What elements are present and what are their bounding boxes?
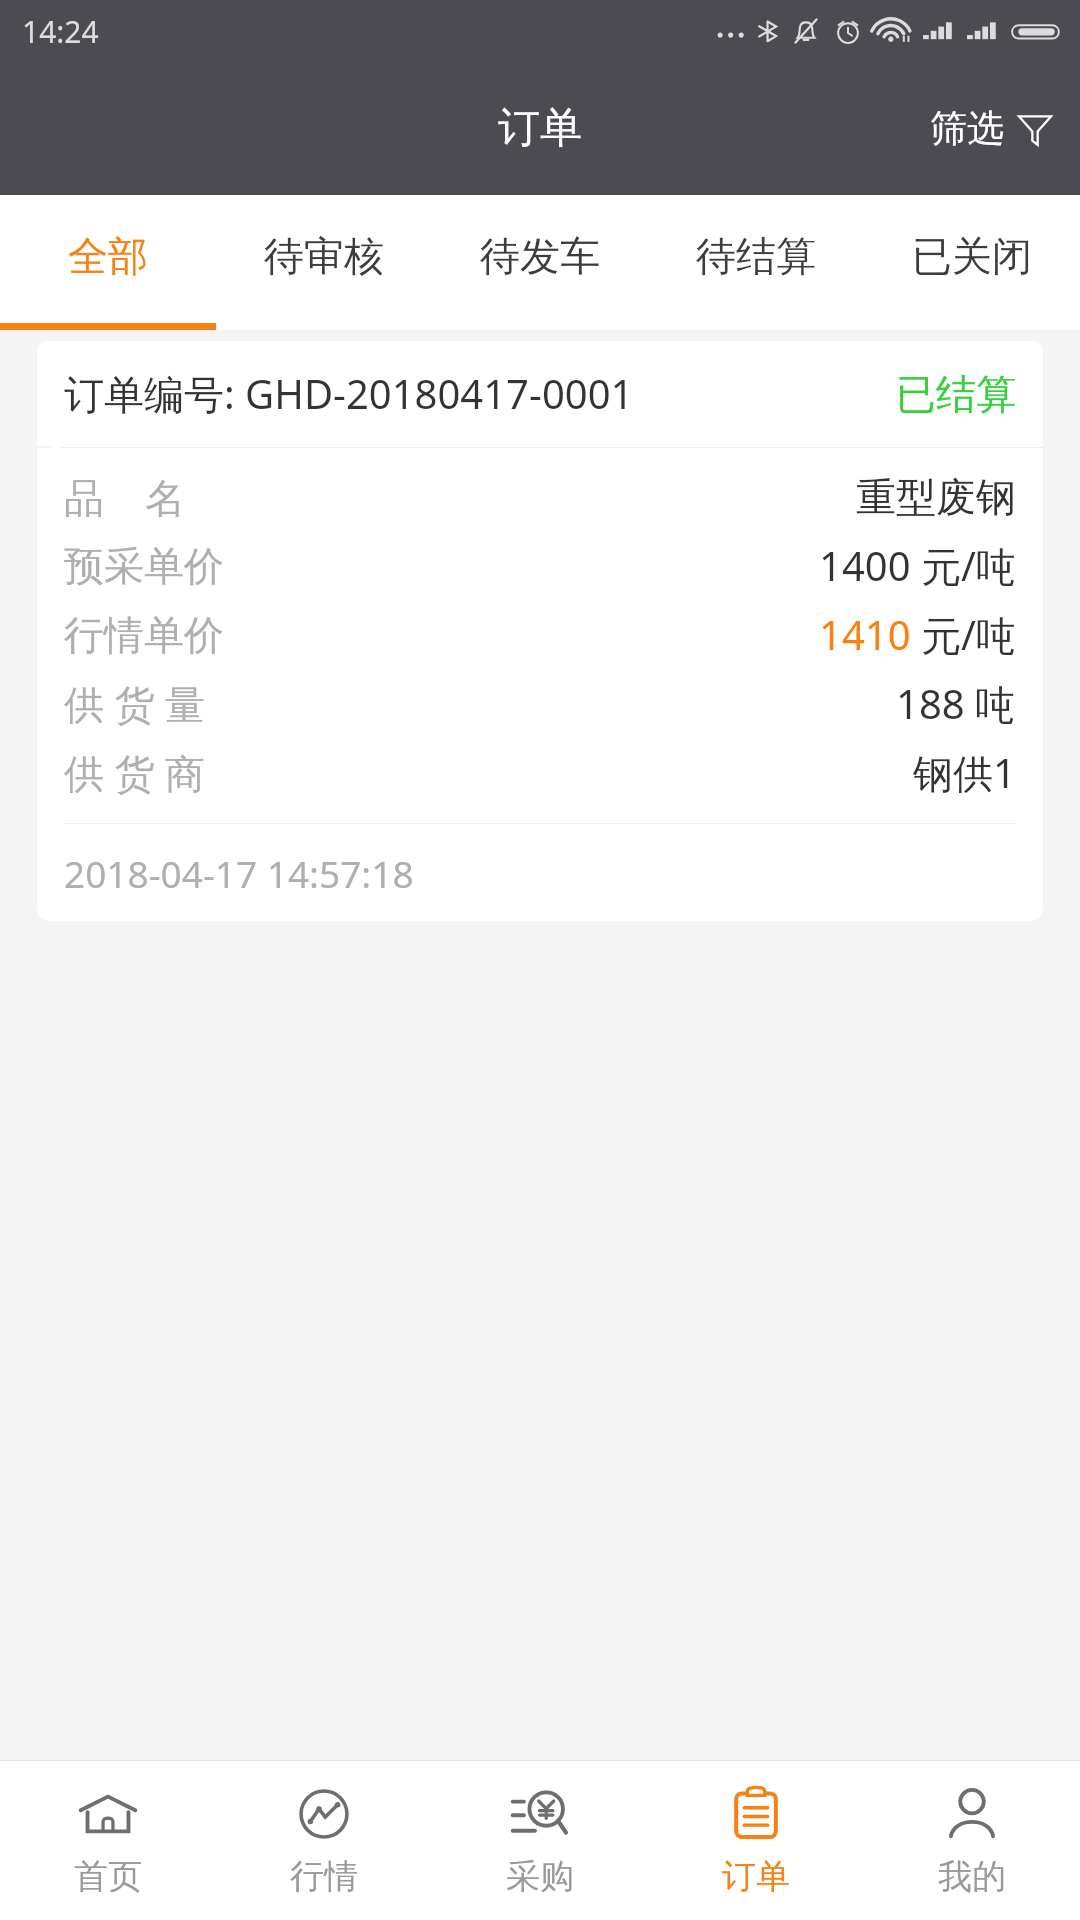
staticText: 已关闭: [912, 231, 1032, 281]
staticText: 供 货 商: [64, 745, 205, 800]
button[interactable]: 行情: [216, 1761, 432, 1920]
staticText: 订单: [722, 1855, 790, 1898]
staticText: 2018-04-17 14:57:18: [64, 848, 414, 898]
staticText: 重型废钢: [856, 472, 1016, 522]
staticText: 筛选: [930, 105, 1004, 152]
staticText: 188 吨: [896, 676, 1016, 731]
staticText: 订单编号: GHD-20180417-0001: [64, 366, 634, 421]
staticText: 供 货 量: [64, 676, 205, 731]
staticText: 行情单价: [64, 610, 224, 660]
staticText: 1410 元/吨: [819, 607, 1016, 662]
button[interactable]: 已关闭: [864, 195, 1080, 330]
button[interactable]: 订单: [648, 1761, 864, 1920]
staticText: 预采单价: [64, 541, 224, 591]
staticText: 待发车: [480, 231, 600, 281]
staticText: 待结算: [696, 231, 816, 281]
staticText: 待审核: [264, 231, 384, 281]
staticText: 1400 元/吨: [819, 538, 1016, 593]
button[interactable]: 待结算: [648, 195, 864, 330]
staticText: 采购: [506, 1855, 574, 1898]
button[interactable]: 首页: [0, 1761, 216, 1920]
button[interactable]: 我的: [864, 1761, 1080, 1920]
staticText: 订单: [498, 102, 582, 155]
button[interactable]: 全部: [0, 195, 216, 330]
button[interactable]: 筛选: [904, 81, 1080, 176]
button[interactable]: 订单编号: GHD-20180417-0001: [37, 341, 1043, 921]
button[interactable]: 待发车: [432, 195, 648, 330]
staticText: 首页: [74, 1855, 142, 1898]
staticText: 行情: [290, 1855, 358, 1898]
staticText: 品 名: [64, 469, 186, 524]
staticText: 14:24: [22, 11, 99, 52]
staticText: 全部: [68, 231, 148, 281]
button[interactable]: 采购: [432, 1761, 648, 1920]
staticText: 钢供1: [913, 745, 1016, 800]
button[interactable]: 待审核: [216, 195, 432, 330]
staticText: 已结算: [896, 369, 1016, 419]
staticText: 我的: [938, 1855, 1006, 1898]
